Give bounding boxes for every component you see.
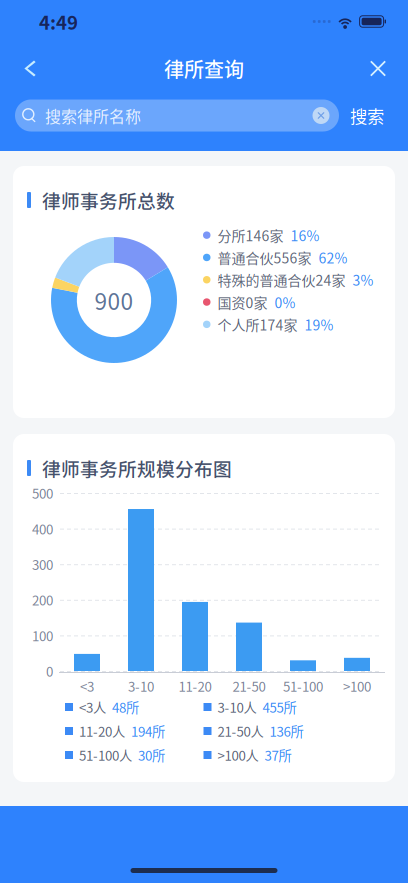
staticText: 搜索律所名称 xyxy=(45,104,141,127)
staticText: 3-10 xyxy=(128,676,154,696)
staticText: 30所 xyxy=(138,745,165,765)
staticText: 分所146家 xyxy=(217,225,283,245)
staticText: <3 xyxy=(80,676,94,696)
staticText: 搜索 xyxy=(350,103,384,128)
staticText: >100人 xyxy=(217,745,258,765)
staticText: 455所 xyxy=(262,697,296,717)
staticText: 37所 xyxy=(264,745,291,765)
staticText: 普通合伙556家 xyxy=(217,247,311,268)
staticText: 律所查询 xyxy=(164,54,244,83)
staticText: 200 xyxy=(32,590,53,609)
staticText: 21-50人 xyxy=(217,721,263,741)
staticText: 19% xyxy=(304,314,333,334)
staticText: >100 xyxy=(343,676,371,696)
staticText: 300 xyxy=(32,554,53,574)
staticText: 194所 xyxy=(131,721,165,741)
staticText: 3% xyxy=(352,270,373,290)
button[interactable]: 返回 xyxy=(8,46,52,90)
staticText: 136所 xyxy=(269,721,303,741)
staticText: 900 xyxy=(94,284,133,316)
staticText: 62% xyxy=(318,247,347,268)
staticText: 个人所174家 xyxy=(217,314,297,334)
button[interactable]: 清除 xyxy=(303,99,339,131)
staticText: 11-20 xyxy=(178,676,211,696)
staticText: 51-100 xyxy=(283,676,323,696)
staticText: 21-50 xyxy=(232,676,265,696)
staticText: 11-20人 xyxy=(79,721,125,741)
staticText: 400 xyxy=(32,519,53,538)
staticText: 16% xyxy=(290,225,319,245)
staticText: 0% xyxy=(274,292,295,312)
staticText: 500 xyxy=(32,483,53,503)
staticText: <3人 xyxy=(79,697,106,717)
staticText: 特殊的普通合伙24家 xyxy=(217,270,345,290)
staticText: 国资0家 xyxy=(217,292,267,312)
staticText: 100 xyxy=(32,626,53,645)
staticText: 3-10人 xyxy=(217,697,256,717)
staticText: 律师事务所总数 xyxy=(42,186,175,213)
staticText: 4:49 xyxy=(39,8,78,35)
staticText: 48所 xyxy=(112,697,139,717)
staticText: 0 xyxy=(46,661,53,681)
staticText: 51-100人 xyxy=(79,745,132,765)
staticText: 律师事务所规模分布图 xyxy=(42,454,232,481)
button[interactable]: 搜索 xyxy=(347,95,387,135)
button[interactable]: 关闭 xyxy=(356,46,400,90)
